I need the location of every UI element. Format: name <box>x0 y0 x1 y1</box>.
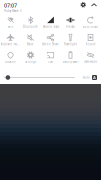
button[interactable]: Dark mode <box>80 49 100 66</box>
staticText: Settings <box>25 60 36 63</box>
staticText: Bluetooth <box>23 25 38 28</box>
button[interactable]: Flashlight <box>60 31 80 49</box>
button[interactable]: Collapse panel <box>91 3 97 7</box>
staticText: Mute <box>27 42 34 46</box>
button[interactable]: Vibrate <box>60 14 80 31</box>
button[interactable]: Auto-rotate <box>80 14 100 31</box>
button[interactable]: Mobile data <box>40 14 60 31</box>
button[interactable]: Wi-Fi <box>0 14 20 31</box>
staticText: 07:07 <box>4 2 17 9</box>
staticText: Wi-Fi <box>7 25 13 28</box>
staticText: Friday March 3 <box>4 9 22 13</box>
staticText: Dark mode <box>83 60 97 63</box>
staticText: Mobile data <box>42 25 58 28</box>
staticText: Record <box>85 42 95 46</box>
staticText: Battery saver <box>62 60 78 63</box>
button[interactable]: Battery saver <box>60 49 80 66</box>
button[interactable]: Auto brightness <box>92 75 97 80</box>
staticText: A <box>93 75 96 80</box>
button[interactable]: Record <box>80 31 100 49</box>
button[interactable]: Settings <box>20 49 40 66</box>
button[interactable]: Settings <box>80 2 86 8</box>
button[interactable]: Bluetooth <box>20 14 40 31</box>
staticText: Vibrate <box>65 25 75 28</box>
button[interactable]: Location <box>0 49 20 66</box>
staticText: Location <box>5 60 16 63</box>
staticText: Auto <box>83 76 90 79</box>
button[interactable]: Airplane mode <box>0 31 20 49</box>
staticText: Screen Share <box>42 42 59 46</box>
staticText: Auto-rotate <box>82 25 98 28</box>
button[interactable]: Screen Share <box>40 31 60 49</box>
button[interactable]: Mute <box>20 31 40 49</box>
staticText: Airplane mode <box>0 42 20 46</box>
button[interactable]: Cast <box>40 49 60 66</box>
staticText: Flashlight <box>64 42 77 46</box>
staticText: Cast <box>48 60 53 63</box>
